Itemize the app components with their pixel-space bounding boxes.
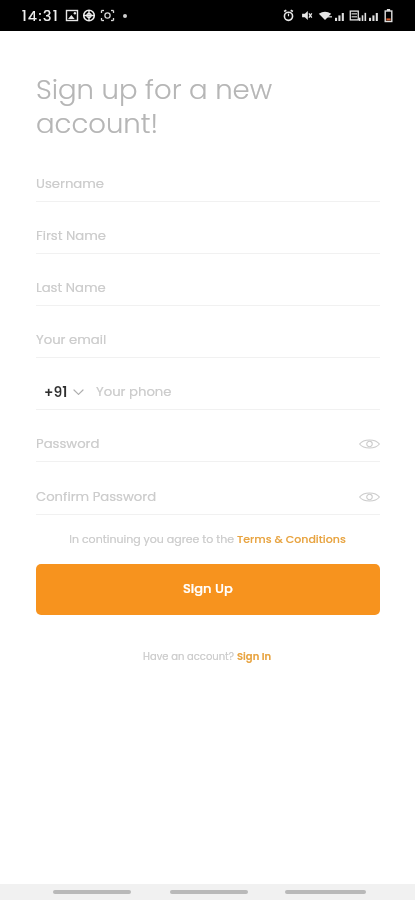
- button[interactable]: +91: [44, 382, 84, 402]
- staticText: Your email: [36, 330, 107, 348]
- staticText: Your phone: [96, 382, 172, 400]
- button[interactable]: Your email: [36, 321, 380, 358]
- button[interactable]: Password: [36, 425, 380, 462]
- staticText: Sign up for a new account!: [36, 70, 273, 142]
- button[interactable]: Last Name: [36, 269, 380, 306]
- button[interactable]: Show password: [348, 429, 380, 459]
- staticText: Password: [36, 434, 100, 452]
- staticText: Sign Up: [183, 579, 233, 597]
- button[interactable]: Show password: [348, 482, 380, 512]
- button[interactable]: Username: [36, 165, 380, 202]
- button[interactable]: First Name: [36, 217, 380, 254]
- button[interactable]: Sign Up: [36, 564, 380, 615]
- button[interactable]: Home: [170, 884, 248, 900]
- button[interactable]: Sign In: [237, 649, 272, 663]
- button[interactable]: Recent apps: [285, 884, 366, 900]
- button[interactable]: In continuing you agree to the Terms & C…: [69, 531, 346, 546]
- staticText: Username: [36, 174, 104, 192]
- button[interactable]: Confirm Password: [36, 478, 380, 515]
- button[interactable]: Back: [53, 884, 131, 900]
- staticText: Last Name: [36, 278, 106, 296]
- staticText: +91: [44, 382, 68, 402]
- staticText: Confirm Password: [36, 487, 157, 505]
- staticText: 14:31: [22, 6, 59, 26]
- staticText: First Name: [36, 226, 106, 244]
- staticText: Have an account?: [143, 649, 237, 663]
- other: Select country code: [73, 388, 84, 396]
